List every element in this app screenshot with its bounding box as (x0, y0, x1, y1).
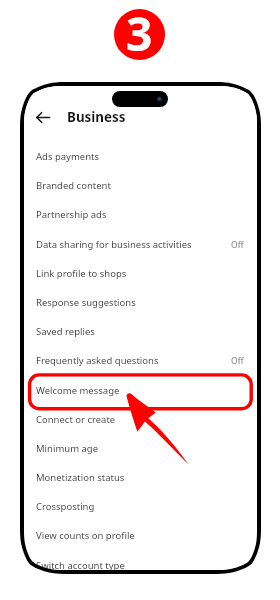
staticText: Partnership ads (36, 208, 107, 221)
staticText: Switch account type (36, 559, 125, 570)
staticText: Monetization status (36, 471, 125, 484)
staticText: Off (231, 355, 244, 367)
button[interactable]: Link profile to shops (24, 259, 257, 288)
staticText: Response suggestions (36, 296, 136, 309)
staticText: Link profile to shops (36, 267, 127, 280)
staticText: Branded content (36, 179, 111, 192)
staticText: Ads payments (36, 150, 100, 163)
button[interactable]: Ads payments (24, 142, 257, 171)
staticText: Frequently asked questions (36, 354, 159, 367)
staticText: Off (231, 239, 244, 251)
staticText: Connect or create (36, 413, 116, 426)
button[interactable]: Crossposting (24, 492, 257, 521)
button[interactable]: Data sharing for business activities (24, 230, 257, 259)
staticText: Business (67, 108, 126, 126)
button[interactable]: Back (27, 102, 58, 133)
button[interactable]: Frequently asked questions (24, 346, 257, 375)
staticText: 3 (126, 9, 153, 53)
button[interactable]: Saved replies (24, 317, 257, 346)
button[interactable]: Welcome message (24, 376, 257, 405)
button[interactable]: Monetization status (24, 463, 257, 492)
staticText: Data sharing for business activities (36, 238, 192, 251)
button[interactable]: Branded content (24, 171, 257, 200)
staticText: Crossposting (36, 500, 95, 513)
button[interactable]: Partnership ads (24, 200, 257, 229)
staticText: Saved replies (36, 325, 95, 338)
button[interactable]: Connect or create (24, 405, 257, 434)
button[interactable]: Minimum age (24, 434, 257, 463)
staticText: Minimum age (36, 442, 99, 455)
button[interactable]: Switch account type (24, 551, 257, 570)
staticText: View counts on profile (36, 529, 135, 542)
button[interactable]: View counts on profile (24, 521, 257, 550)
staticText: Welcome message (36, 384, 120, 397)
button[interactable]: Response suggestions (24, 288, 257, 317)
